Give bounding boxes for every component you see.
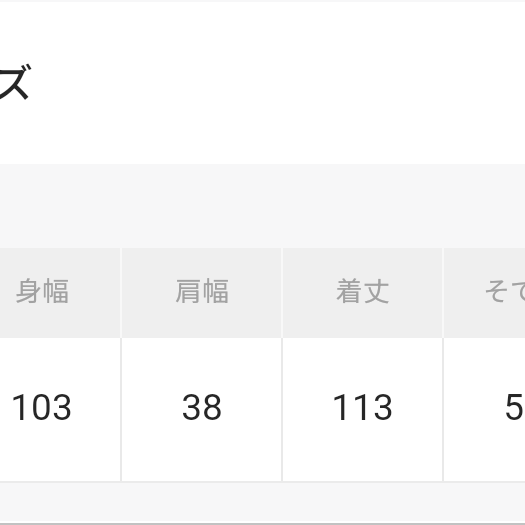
staticText: 肩幅 <box>175 270 229 309</box>
staticText: 59 <box>503 386 525 429</box>
button[interactable]: 身幅 <box>0 248 121 338</box>
staticText: 103 <box>10 386 73 429</box>
button[interactable]: 肩幅 <box>122 248 281 338</box>
button[interactable]: そで丈 <box>444 248 525 338</box>
button[interactable]: 38 <box>122 338 281 481</box>
button[interactable]: 103 <box>0 338 121 481</box>
staticText: ズ <box>0 52 33 110</box>
button[interactable]: 59 <box>444 338 525 481</box>
staticText: 113 <box>331 386 394 429</box>
button[interactable]: 着丈 <box>283 248 442 338</box>
staticText: そで丈 <box>483 270 525 309</box>
staticText: 身幅 <box>15 270 69 309</box>
button[interactable]: 113 <box>283 338 442 481</box>
staticText: 38 <box>181 386 223 429</box>
staticText: 着丈 <box>336 270 390 309</box>
